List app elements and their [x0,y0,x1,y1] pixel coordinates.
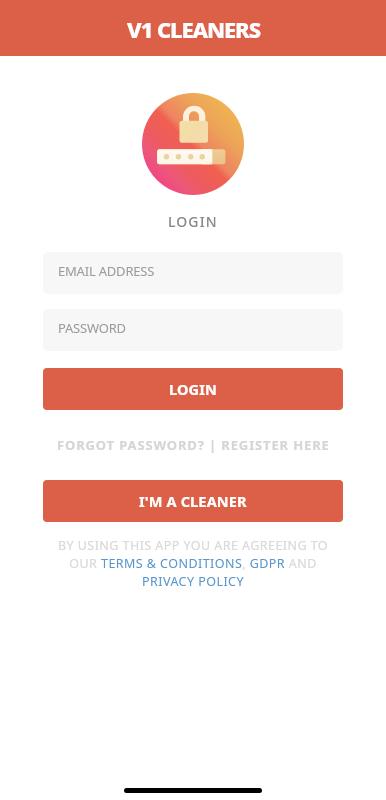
staticText: BY USING THIS APP YOU ARE AGREEING TO OU… [50,537,336,589]
staticText: V1 CLEANERS [127,14,260,44]
button[interactable]: LOGIN [43,368,343,410]
staticText: FORGOT PASSWORD? | REGISTER HERE [57,436,330,454]
staticText: EMAIL ADDRESS [58,262,155,280]
staticText: LOGIN [169,379,217,399]
button[interactable]: EMAIL ADDRESS [43,252,343,294]
staticText: PASSWORD [58,319,126,337]
button[interactable]: FORGOT PASSWORD? | REGISTER HERE [0,436,386,454]
button[interactable]: BY USING THIS APP YOU ARE AGREEING TO OU… [50,537,336,589]
button[interactable]: I'M A CLEANER [43,480,343,522]
staticText: I'M A CLEANER [139,491,247,511]
button[interactable]: PASSWORD [43,309,343,351]
staticText: LOGIN [168,212,218,231]
